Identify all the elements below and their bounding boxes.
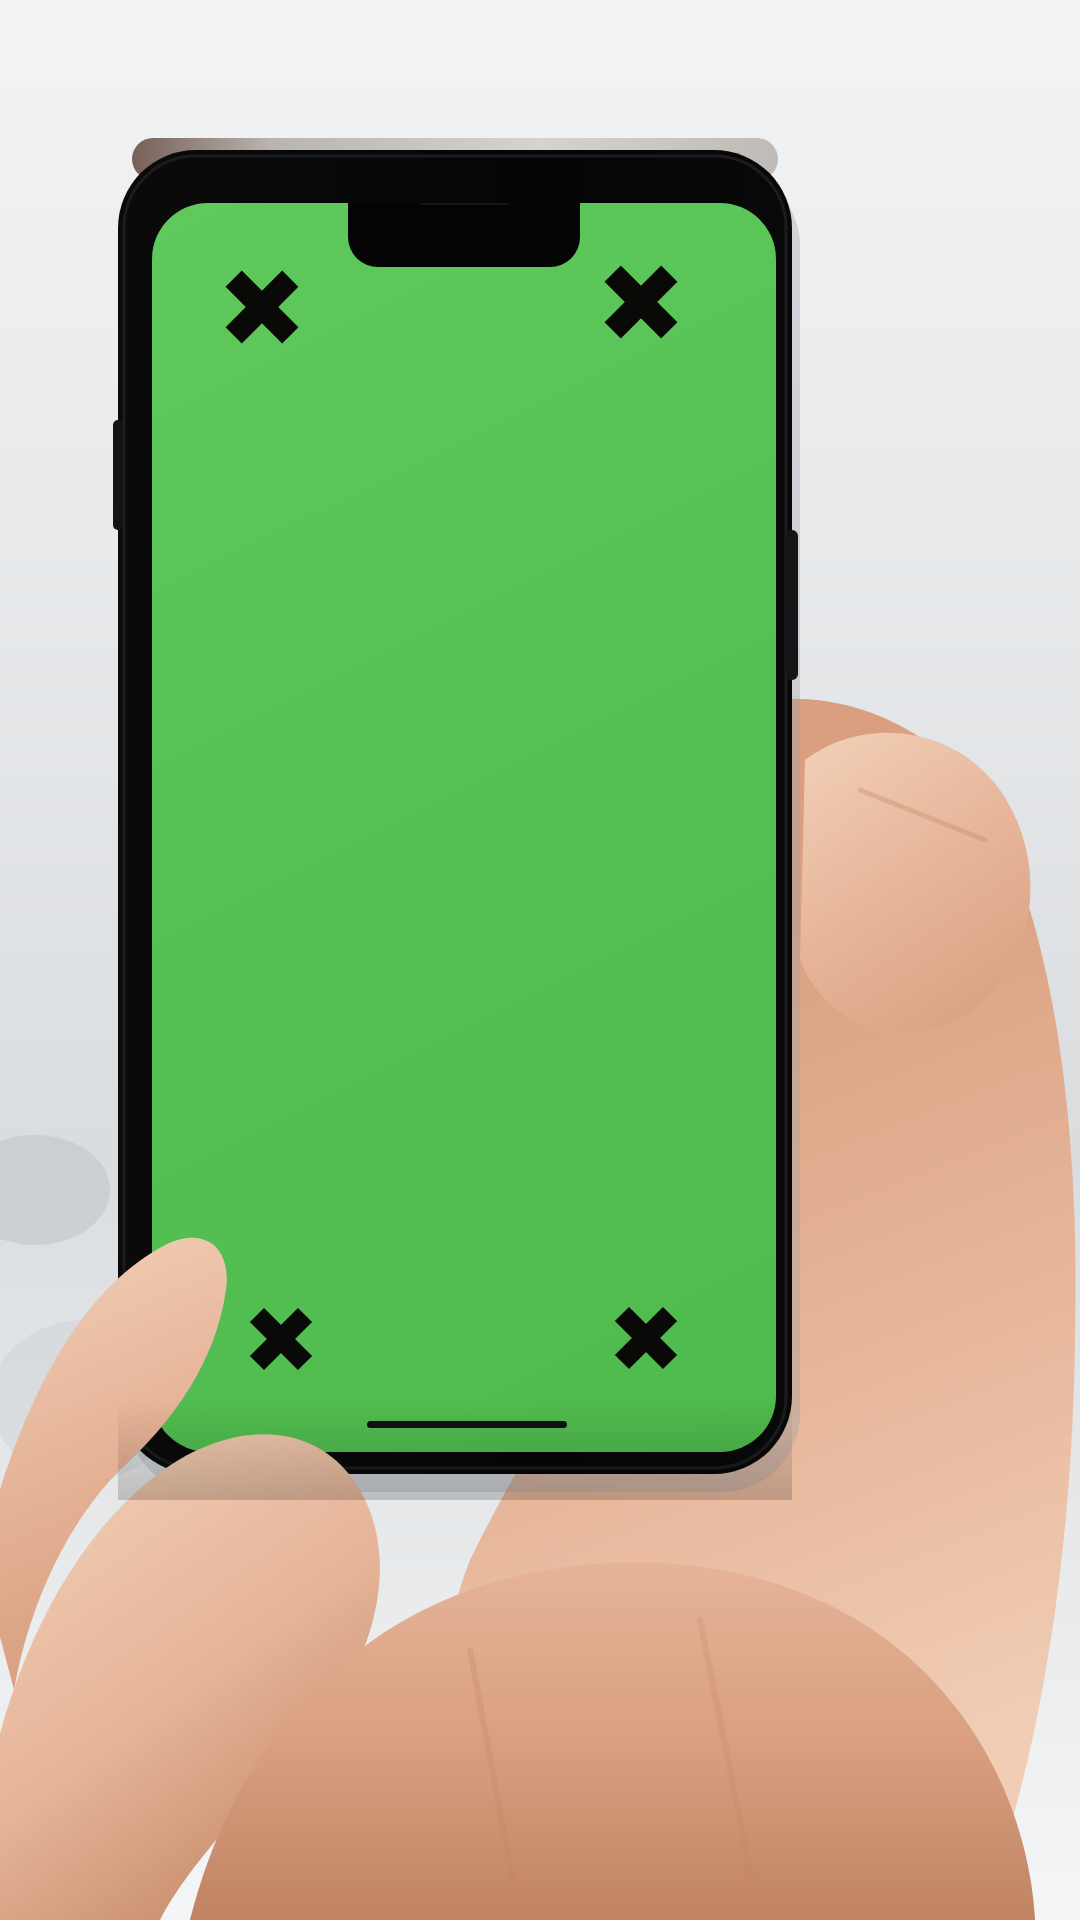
button[interactable]: Hand holding phone with green screen bbox=[0, 0, 1080, 1920]
